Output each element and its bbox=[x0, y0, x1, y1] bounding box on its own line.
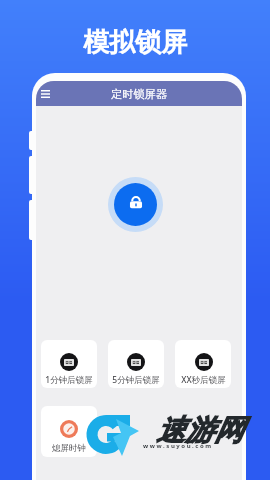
staticText: w w w . s u y o u . c o m bbox=[143, 442, 212, 450]
staticText: 模拟锁屏 bbox=[83, 26, 187, 59]
staticText: 5分钟后锁屏 bbox=[112, 374, 160, 386]
button[interactable]: 熄屏时钟 bbox=[41, 406, 97, 457]
button[interactable]: XX秒后锁屏 bbox=[175, 340, 231, 388]
staticText: 定时锁屏器 bbox=[111, 87, 167, 101]
button[interactable]: Menu bbox=[37, 86, 53, 102]
button[interactable]: Lock screen now bbox=[108, 177, 163, 232]
staticText: 熄屏时钟 bbox=[52, 443, 86, 454]
button[interactable]: 5分钟后锁屏 bbox=[108, 340, 164, 388]
staticText: 1分钟后锁屏 bbox=[45, 374, 93, 386]
button[interactable]: Menu bbox=[36, 81, 242, 106]
staticText: XX秒后锁屏 bbox=[181, 374, 226, 386]
staticText: 速游网 bbox=[156, 412, 243, 449]
button[interactable]: 1分钟后锁屏 bbox=[41, 340, 97, 388]
